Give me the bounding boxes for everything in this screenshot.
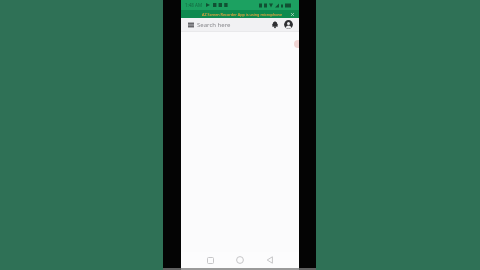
staticText: 1:48 AM xyxy=(185,2,203,8)
staticText: Search here xyxy=(197,21,231,29)
button[interactable] xyxy=(225,252,255,268)
button[interactable] xyxy=(188,22,194,28)
staticText: AZ Screen Recorder App is using micropho… xyxy=(202,12,283,17)
button[interactable] xyxy=(195,252,225,268)
button[interactable] xyxy=(284,20,293,29)
button[interactable] xyxy=(271,21,279,29)
button[interactable] xyxy=(290,12,295,17)
button[interactable]: Search here xyxy=(197,18,271,31)
button[interactable] xyxy=(294,40,299,48)
button[interactable] xyxy=(255,252,285,268)
